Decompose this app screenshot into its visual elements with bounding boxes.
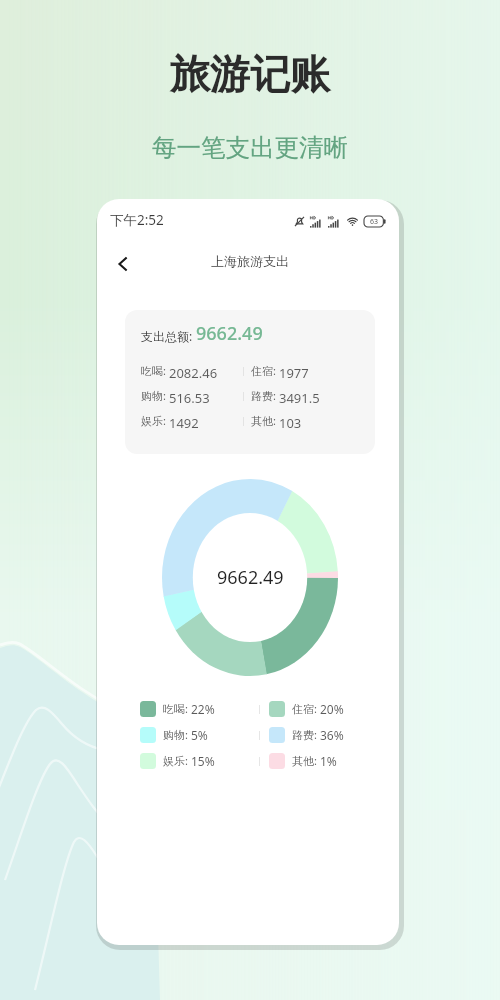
staticText: 娱乐: [141,413,166,427]
staticText: 吃喝: [163,701,188,716]
button[interactable]: 娱乐: [140,753,215,769]
staticText: 1% [320,753,337,769]
staticText: 路费: [292,727,317,742]
staticText: 15% [191,753,215,769]
button[interactable]: 返回 [109,250,137,278]
staticText: 住宿: [292,701,317,716]
staticText: 吃喝: [141,363,166,377]
staticText: 5% [191,727,208,743]
button[interactable]: 支出总额: [125,310,375,454]
staticText: 每一笔支出更清晰 [152,132,348,163]
staticText: 其他: [251,413,276,427]
staticText: 娱乐: [163,753,188,768]
staticText: 1492 [169,414,199,428]
staticText: 103 [279,414,302,428]
staticText: 1977 [279,364,309,378]
staticText: 住宿: [251,363,276,377]
staticText: 购物: [141,388,166,402]
staticText: 36% [320,727,344,743]
button[interactable]: 路费: [269,727,344,743]
staticText: 22% [191,701,215,717]
staticText: 路费: [251,388,276,402]
button[interactable]: 其他: [269,753,337,769]
staticText: 9662.49 [217,565,284,590]
staticText: 其他: [292,753,317,768]
button[interactable]: 购物: [140,727,208,743]
staticText: 旅游记账 [170,49,330,99]
staticText: 上海旅游支出 [211,253,289,269]
staticText: 9662.49 [196,321,263,346]
button[interactable]: 住宿: [269,701,344,717]
staticText: 下午2:52 [110,211,164,229]
staticText: 支出总额: [141,328,196,344]
staticText: 20% [320,701,344,717]
staticText: 2082.46 [169,364,218,378]
button[interactable]: 吃喝: [140,701,215,717]
staticText: 购物: [163,727,188,742]
staticText: 516.53 [169,389,210,403]
staticText: 3491.5 [279,389,320,403]
staticText: 63 [370,217,379,227]
